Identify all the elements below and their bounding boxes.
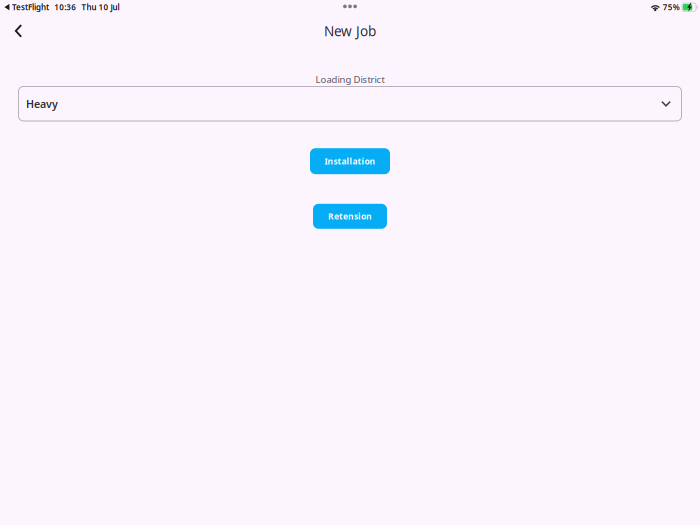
staticText: Heavy [26,96,58,111]
staticText: 75% [663,2,680,13]
staticText: 10:36 [54,2,76,13]
button[interactable]: Installation [310,148,390,174]
button[interactable]: Retension [313,204,387,229]
staticText: TestFlight [12,2,49,13]
staticText: Loading District [315,73,384,86]
button[interactable]: Heavy [18,86,681,121]
button[interactable]: Back [2,16,34,46]
staticText: New Job [324,22,376,40]
staticText: Retension [328,210,372,222]
staticText: Installation [324,155,375,167]
staticText: Thu 10 Jul [82,2,120,13]
